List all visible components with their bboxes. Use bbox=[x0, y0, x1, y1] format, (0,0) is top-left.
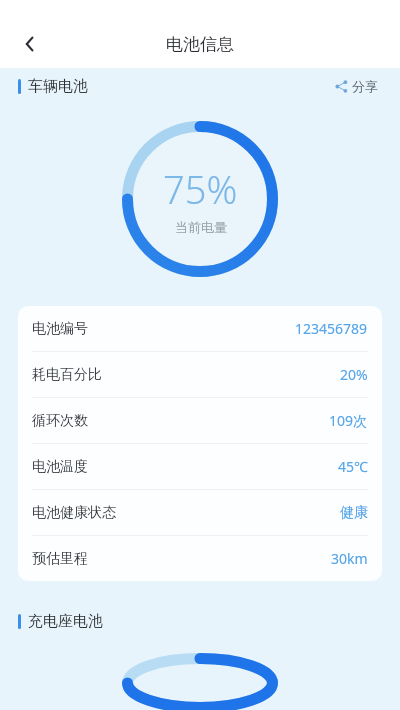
staticText: 循环次数 bbox=[32, 412, 88, 430]
button[interactable]: 循环次数 bbox=[32, 398, 368, 443]
staticText: 45℃ bbox=[338, 457, 368, 476]
button[interactable]: 电池编号 bbox=[32, 306, 368, 351]
staticText: 电池编号 bbox=[32, 320, 88, 338]
staticText: 电池健康状态 bbox=[32, 504, 116, 522]
staticText: 健康 bbox=[340, 504, 368, 522]
staticText: 电池温度 bbox=[32, 458, 88, 476]
button[interactable]: 分享 bbox=[331, 74, 382, 98]
staticText: 电池信息 bbox=[166, 34, 234, 55]
button[interactable]: Back bbox=[8, 22, 52, 66]
staticText: 75% bbox=[163, 163, 238, 215]
staticText: 耗电百分比 bbox=[32, 366, 102, 384]
staticText: 109次 bbox=[329, 411, 368, 430]
staticText: 20% bbox=[340, 365, 368, 384]
button[interactable]: 预估里程 bbox=[32, 536, 368, 581]
button[interactable]: 耗电百分比 bbox=[32, 352, 368, 397]
staticText: 车辆电池 bbox=[28, 77, 88, 96]
staticText: 预估里程 bbox=[32, 550, 88, 568]
staticText: 123456789 bbox=[295, 319, 368, 338]
staticText: 当前电量 bbox=[175, 219, 227, 235]
button[interactable]: 电池健康状态 bbox=[32, 490, 368, 535]
staticText: 充电座电池 bbox=[28, 612, 103, 631]
staticText: 分享 bbox=[352, 78, 378, 94]
staticText: 30km bbox=[331, 549, 368, 568]
button[interactable]: 电池温度 bbox=[32, 444, 368, 489]
